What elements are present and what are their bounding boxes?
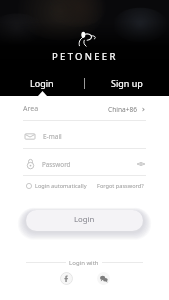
- button[interactable]: Login with Facebook: [60, 272, 73, 285]
- staticText: PETONEER: [52, 50, 118, 63]
- staticText: Login: [30, 77, 54, 89]
- staticText: China+86: [108, 105, 138, 114]
- button[interactable]: Login with WeChat: [97, 272, 110, 285]
- button[interactable]: Sign up: [85, 74, 169, 92]
- staticText: E-mail: [43, 132, 62, 141]
- button[interactable]: Forgot password?: [97, 182, 144, 190]
- staticText: Login with: [66, 259, 102, 267]
- staticText: Login automatically: [35, 182, 87, 190]
- staticText: Sign up: [111, 77, 143, 89]
- button[interactable]: Login automatically: [26, 182, 87, 190]
- button[interactable]: Login: [0, 74, 84, 92]
- staticText: Password: [42, 160, 71, 169]
- button[interactable]: Show password: [136, 159, 146, 169]
- button[interactable]: Login: [26, 210, 143, 231]
- staticText: Area: [23, 104, 39, 114]
- staticText: Login: [74, 214, 95, 225]
